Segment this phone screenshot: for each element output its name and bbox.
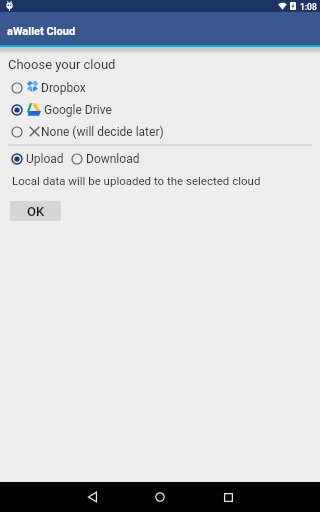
staticText: Upload	[26, 152, 64, 166]
staticText: Choose your cloud	[8, 57, 116, 72]
button[interactable]: Upload	[5, 149, 68, 169]
staticText: aWallet Cloud	[7, 25, 76, 38]
button[interactable]: Home	[143, 482, 177, 512]
staticText: Download	[86, 152, 140, 166]
staticText: OK	[27, 204, 45, 219]
staticText: Dropbox	[41, 81, 86, 95]
button[interactable]: Google Drive	[0, 101, 320, 119]
button[interactable]: Recent apps	[211, 482, 245, 512]
button[interactable]: Back	[75, 482, 109, 512]
staticText: Google Drive	[44, 103, 112, 117]
staticText: 1:08	[300, 2, 317, 12]
button[interactable]: Download	[65, 149, 144, 169]
button[interactable]: Dropbox	[0, 79, 320, 97]
button[interactable]: None (will decide later)	[0, 123, 320, 141]
staticText: Local data will be uploaded to the selec…	[12, 174, 261, 187]
staticText: None (will decide later)	[41, 125, 164, 139]
button[interactable]: OK	[10, 201, 61, 221]
